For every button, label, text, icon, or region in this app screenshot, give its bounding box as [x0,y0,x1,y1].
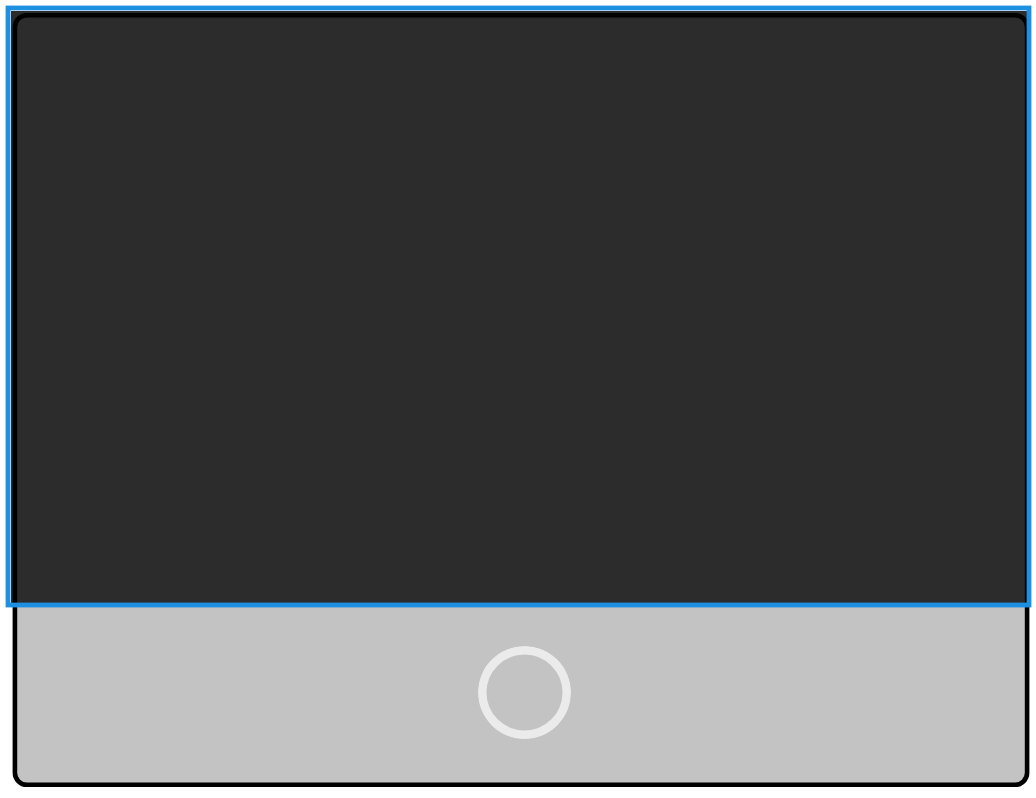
button[interactable]: Home [478,646,571,739]
button[interactable] [11,11,1027,603]
